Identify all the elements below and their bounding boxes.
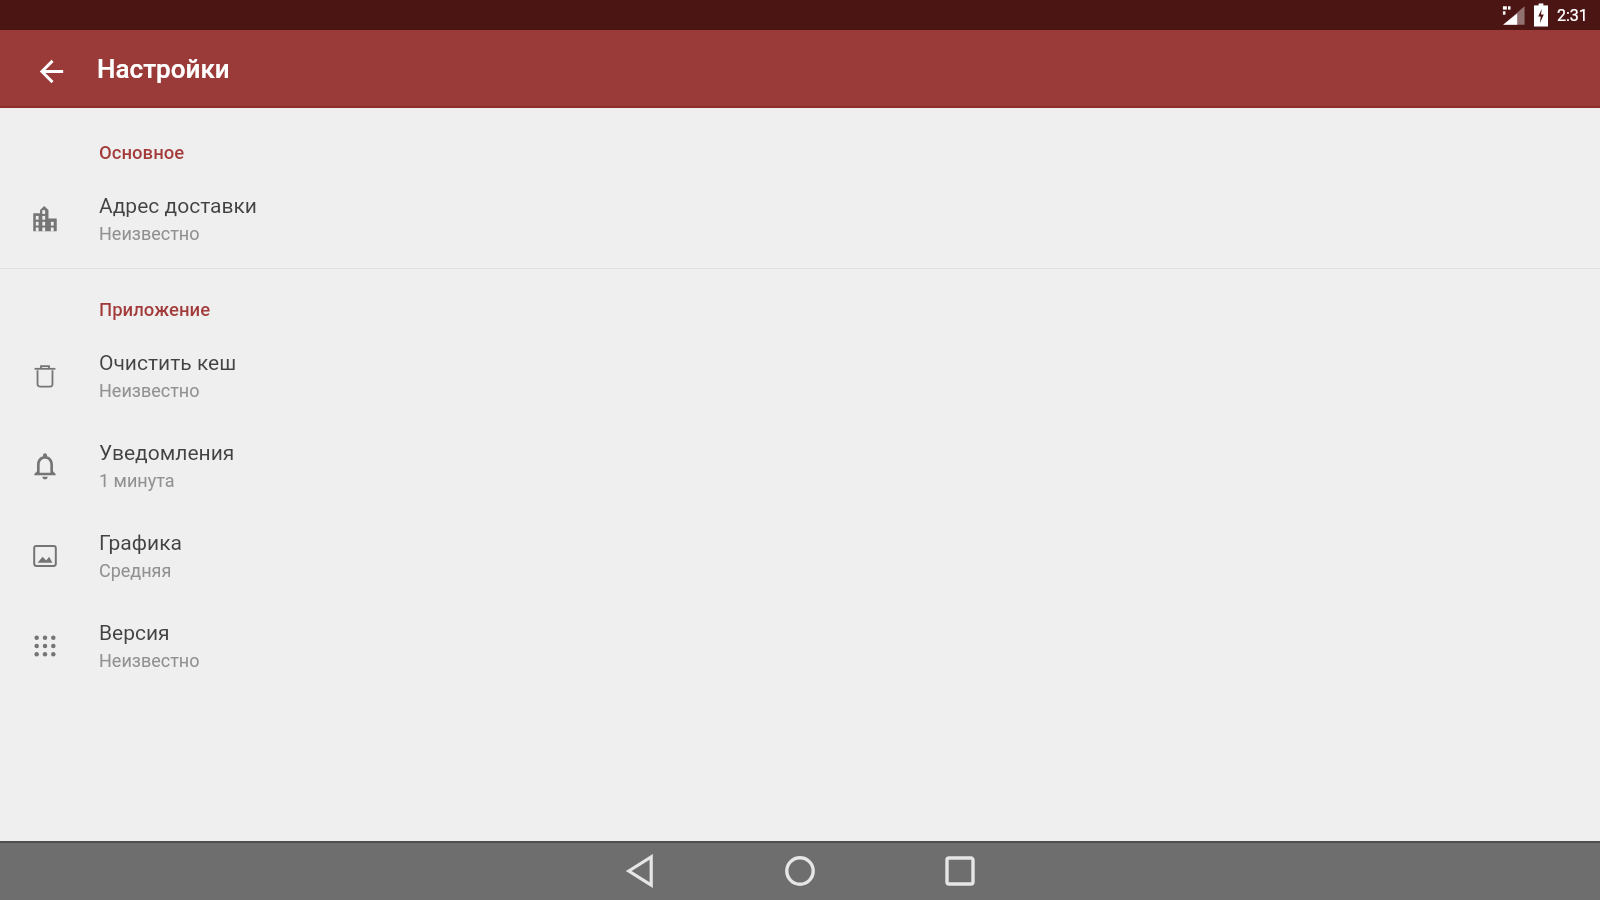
staticText: Приложение xyxy=(99,299,211,321)
button[interactable]: Адрес доставки xyxy=(0,174,1600,264)
staticText: Адрес доставки xyxy=(99,194,257,219)
staticText: Неизвестно xyxy=(99,380,200,401)
button[interactable]: Back xyxy=(27,45,75,93)
button[interactable]: Back xyxy=(560,841,720,900)
staticText: Основное xyxy=(99,142,185,164)
staticText: Очистить кеш xyxy=(99,351,237,376)
staticText: 1 минута xyxy=(99,470,175,491)
button[interactable]: Версия xyxy=(0,601,1600,691)
staticText: 2:31 xyxy=(1557,6,1588,25)
button[interactable]: Очистить кеш xyxy=(0,331,1600,421)
button[interactable]: Home xyxy=(720,841,880,900)
button[interactable]: Графика xyxy=(0,511,1600,601)
staticText: Настройки xyxy=(97,54,230,84)
staticText: Уведомления xyxy=(99,441,235,466)
staticText: Графика xyxy=(99,531,182,556)
staticText: Средняя xyxy=(99,560,172,581)
staticText: Неизвестно xyxy=(99,223,200,244)
staticText: Неизвестно xyxy=(99,650,200,671)
button[interactable]: Recents xyxy=(880,841,1040,900)
staticText: Версия xyxy=(99,621,170,646)
button[interactable]: Уведомления xyxy=(0,421,1600,511)
